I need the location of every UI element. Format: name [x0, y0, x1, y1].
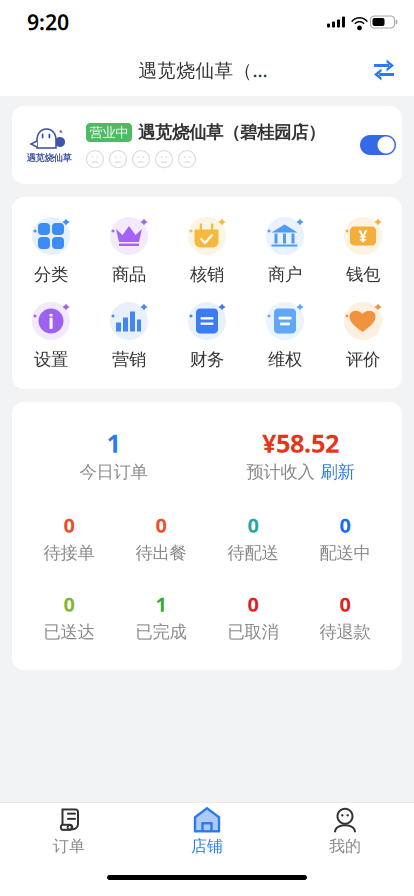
button[interactable]: 评价 — [324, 302, 402, 370]
staticText: 0 — [63, 591, 74, 617]
staticText: 已完成 — [135, 621, 186, 643]
staticText: 9:20 — [27, 8, 69, 36]
staticText: 待退款 — [319, 621, 370, 643]
staticText: ¥58.52 — [262, 426, 339, 460]
staticText: ¥ — [358, 225, 367, 247]
staticText: 待出餐 — [135, 542, 186, 564]
staticText: 1 — [106, 426, 120, 460]
staticText: 待配送 — [227, 542, 278, 564]
staticText: 设置 — [34, 349, 68, 370]
staticText: 订单 — [53, 836, 85, 856]
staticText: 配送中 — [319, 542, 370, 564]
button[interactable]: 0 — [299, 594, 391, 642]
staticText: 1 — [155, 591, 166, 617]
staticText: 营业中 — [89, 124, 128, 141]
staticText: 待接单 — [43, 542, 94, 564]
button[interactable]: 0 — [299, 515, 391, 563]
button[interactable]: 维权 — [246, 302, 324, 370]
staticText: 店铺 — [191, 836, 223, 856]
staticText: 遇苋烧仙草（碧桂园店） — [138, 122, 325, 143]
staticText: 核销 — [190, 264, 224, 285]
staticText: 财务 — [190, 349, 224, 370]
staticText: 商户 — [268, 264, 302, 285]
staticText: 0 — [247, 512, 258, 538]
staticText: i — [48, 308, 54, 334]
staticText: 预计收入 — [246, 461, 314, 483]
staticText: 遇苋烧仙草（… — [138, 58, 267, 82]
button[interactable]: 切换店铺 — [362, 48, 406, 92]
staticText: 分类 — [34, 264, 68, 285]
staticText: 已取消 — [227, 621, 278, 643]
button[interactable]: 0 — [23, 594, 115, 642]
staticText: 0 — [63, 512, 74, 538]
button[interactable]: ¥ — [324, 217, 402, 285]
button[interactable]: i — [12, 302, 90, 370]
staticText: 今日订单 — [79, 461, 147, 483]
button[interactable]: 营业状态开关 — [360, 135, 402, 155]
button[interactable]: 0 — [23, 515, 115, 563]
button[interactable]: 0 — [115, 515, 207, 563]
button[interactable]: 1 — [115, 594, 207, 642]
staticText: 商品 — [112, 264, 146, 285]
button[interactable]: 0 — [207, 515, 299, 563]
button[interactable]: 刷新 — [320, 461, 354, 483]
button[interactable]: 分类 — [12, 217, 90, 285]
staticText: 钱包 — [346, 264, 380, 285]
button[interactable]: 订单 — [0, 801, 138, 856]
staticText: 评价 — [346, 349, 380, 370]
staticText: 已送达 — [43, 621, 94, 643]
button[interactable]: 我的 — [276, 801, 414, 856]
button[interactable]: 财务 — [168, 302, 246, 370]
button[interactable]: 店铺 — [138, 801, 276, 856]
staticText: 营销 — [112, 349, 146, 370]
staticText: 遇苋烧仙草 — [26, 152, 71, 164]
staticText: 0 — [339, 512, 350, 538]
button[interactable]: 商品 — [90, 217, 168, 285]
button[interactable]: 营销 — [90, 302, 168, 370]
button[interactable]: 0 — [207, 594, 299, 642]
button[interactable]: 商户 — [246, 217, 324, 285]
staticText: 维权 — [268, 349, 302, 370]
staticText: 我的 — [329, 836, 361, 856]
button[interactable]: 核销 — [168, 217, 246, 285]
staticText: 刷新 — [320, 461, 354, 483]
staticText: 0 — [339, 591, 350, 617]
staticText: 0 — [155, 512, 166, 538]
staticText: 0 — [247, 591, 258, 617]
